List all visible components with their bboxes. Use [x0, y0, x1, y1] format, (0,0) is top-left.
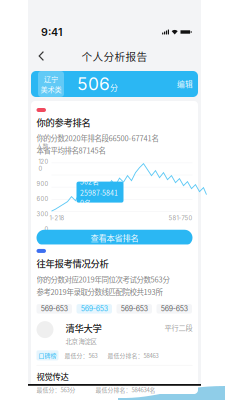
staticText: 506 — [77, 73, 110, 94]
staticText: 本省平均排名87145名 — [36, 145, 105, 156]
staticText: 1200 — [38, 158, 48, 172]
staticText: 569-653 — [41, 305, 68, 313]
staticText: 569-653 — [81, 305, 108, 313]
staticText: 最低分排名：584634名 — [95, 385, 155, 394]
button[interactable]: 清华大学 — [36, 321, 192, 360]
button[interactable]: 视觉传达 — [36, 370, 192, 394]
staticText: 分 — [110, 81, 118, 93]
staticText: 编辑 — [177, 78, 193, 90]
staticText: 平行二段 — [164, 322, 192, 332]
staticText: 300 — [36, 210, 48, 218]
staticText: 视觉传达 — [36, 370, 68, 382]
button[interactable]: 查看本省排名 — [36, 230, 192, 246]
staticText: 最低分排名：58463 — [107, 351, 158, 360]
button[interactable]: 569-653 — [116, 304, 152, 314]
staticText: 1-218 — [49, 215, 64, 222]
staticText: 你的参考排名 — [36, 115, 90, 129]
staticText: 清华大学 — [65, 321, 101, 335]
staticText: 参考2019年录取分数线匹配院校共193所 — [36, 286, 162, 297]
staticText: 900 — [36, 180, 48, 187]
staticText: 辽宁 — [44, 74, 58, 84]
button[interactable]: 569-653 — [156, 304, 192, 314]
staticText: 581-750 — [168, 215, 192, 222]
staticText: 0 — [44, 226, 48, 233]
staticText: 你的分数2020年排名段66500-67741名 — [36, 132, 158, 143]
staticText: 个人分析报告 — [81, 48, 147, 64]
staticText: 北京 海淀区 — [65, 337, 96, 346]
staticText: 569-653 — [161, 305, 188, 313]
button[interactable]: 编辑 — [173, 73, 197, 95]
staticText: 查看本省排名 — [90, 232, 138, 244]
button[interactable]: 569-653 — [76, 304, 112, 314]
staticText: 562名 — [80, 177, 99, 187]
staticText: 569-653 — [121, 305, 148, 313]
staticText: 9:41 — [41, 25, 63, 38]
staticText: 最低分：563分 — [36, 385, 75, 394]
staticText: 往年报考情况分析 — [36, 256, 108, 270]
staticText: 25987-58410名 — [80, 188, 118, 208]
button[interactable]: Back — [28, 46, 56, 66]
staticText: 最低分：563 — [64, 351, 97, 360]
staticText: 美术类 — [40, 84, 61, 94]
staticText: 人数 — [36, 142, 48, 150]
button[interactable]: 569-653 — [36, 304, 72, 314]
staticText: 600 — [36, 195, 48, 202]
staticText: 你的分数对应2019年同位次考试分数563分 — [36, 274, 169, 285]
staticText: 口碑榜 — [38, 351, 56, 360]
